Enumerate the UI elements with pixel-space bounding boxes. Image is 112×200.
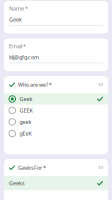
staticText: Name * bbox=[9, 5, 28, 12]
staticText: gEeK bbox=[19, 130, 31, 137]
staticText: 1/1 bbox=[98, 165, 103, 170]
staticText: geek bbox=[19, 118, 31, 125]
button[interactable]: Geek bbox=[4, 93, 108, 105]
staticText: blj@gfg.com bbox=[9, 54, 39, 61]
staticText: Geek bbox=[9, 16, 22, 23]
staticText: GeeksFor * bbox=[18, 164, 46, 171]
staticText: Email * bbox=[9, 43, 26, 50]
staticText: Geek bbox=[19, 95, 32, 102]
staticText: Geeks bbox=[9, 180, 25, 187]
button[interactable]: geek bbox=[4, 116, 108, 128]
button[interactable]: GEEK bbox=[4, 105, 108, 116]
staticText: GEEK bbox=[19, 107, 32, 114]
staticText: Who are we? * bbox=[18, 81, 52, 88]
staticText: 1/1 bbox=[98, 82, 103, 87]
button[interactable]: gEeK bbox=[4, 128, 108, 139]
